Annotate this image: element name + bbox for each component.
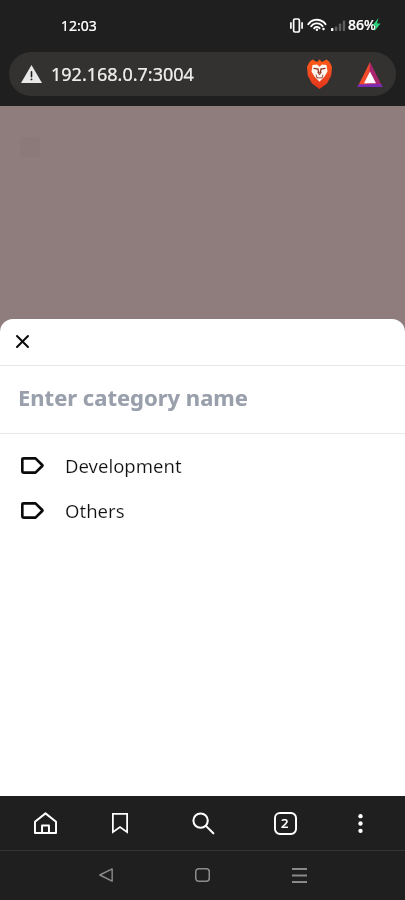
staticText: 86% — [348, 15, 376, 34]
button[interactable]: 192.168.0.7:3004 — [9, 52, 396, 96]
staticText: Development — [65, 453, 182, 478]
button[interactable]: More options — [337, 796, 383, 850]
button[interactable]: Search — [180, 796, 226, 850]
button[interactable]: Brave Shields — [305, 58, 334, 90]
staticText: Enter category name — [18, 382, 248, 412]
button[interactable]: Brave Rewards — [356, 60, 384, 88]
staticText: 192.168.0.7:3004 — [51, 62, 194, 87]
button[interactable]: Enter category name — [0, 366, 405, 433]
button[interactable]: Tabs — [262, 796, 308, 850]
button[interactable]: Others — [0, 488, 405, 533]
staticText: 2 — [281, 814, 289, 832]
staticText: Others — [65, 498, 125, 523]
button[interactable]: Recents — [278, 850, 320, 900]
button[interactable]: Back — [85, 850, 127, 900]
button[interactable]: Close — [8, 327, 37, 356]
button[interactable]: Home — [181, 850, 223, 900]
button[interactable]: Bookmarks — [97, 796, 143, 850]
staticText: 12:03 — [61, 16, 97, 35]
button[interactable]: Development — [0, 443, 405, 488]
button[interactable]: Home — [22, 796, 68, 850]
